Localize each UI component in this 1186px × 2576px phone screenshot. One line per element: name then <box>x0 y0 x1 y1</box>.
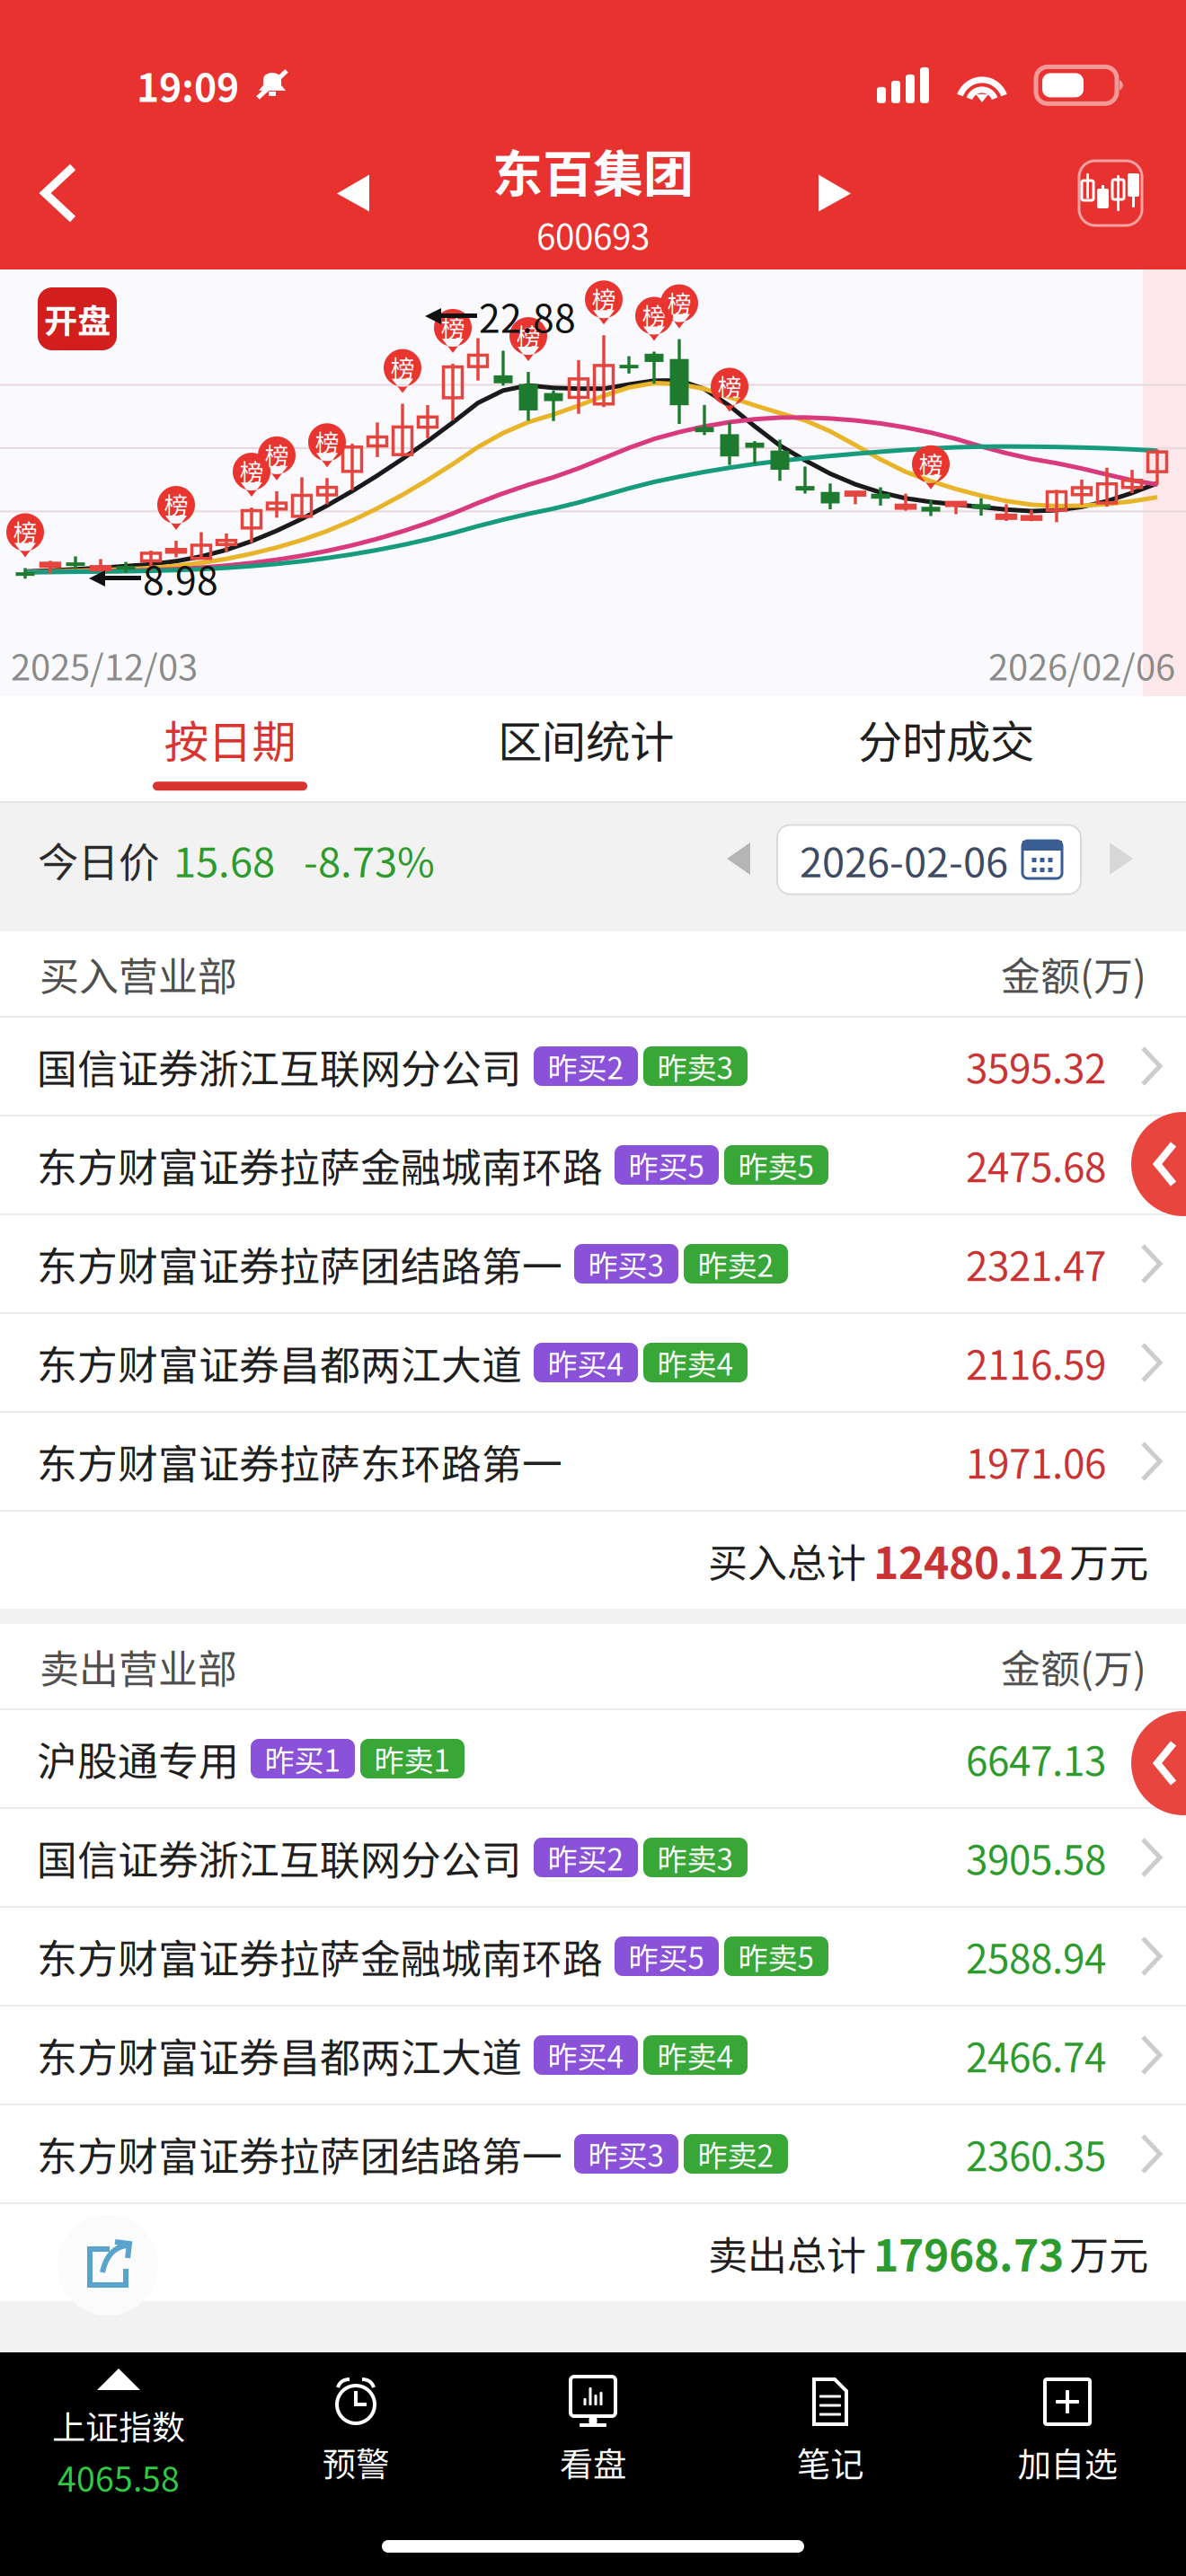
button[interactable]: 上证指数 <box>0 2365 237 2502</box>
staticText: 15.68 <box>173 830 275 889</box>
staticText: 22.88 <box>479 288 576 344</box>
staticText: 金额(万) <box>1001 1637 1146 1695</box>
staticText: 600693 <box>536 209 650 260</box>
staticText: 2025/12/03 <box>11 639 198 691</box>
button[interactable]: 东方财富证券拉萨金融城南环路 <box>0 1908 1186 2005</box>
staticText: 加自选 <box>1018 2438 1117 2486</box>
staticText: 1971.06 <box>966 1433 1106 1490</box>
staticText: 榜 <box>265 437 289 472</box>
staticText: 榜 <box>164 487 188 521</box>
staticText: 上证指数 <box>52 2401 185 2449</box>
staticText: 万元 <box>1069 1531 1148 1589</box>
staticText: 东方财富证券拉萨东环路第一 <box>37 1432 562 1491</box>
staticText: 榜 <box>667 285 691 320</box>
button[interactable]: 上一只 <box>301 135 405 251</box>
staticText: 榜 <box>13 514 37 549</box>
button[interactable]: 东方财富证券拉萨团结路第一 <box>0 2105 1186 2202</box>
staticText: 国信证券浙江互联网分公司 <box>37 1037 522 1095</box>
staticText: 昨买4 <box>548 1341 624 1384</box>
staticText: 昨卖2 <box>698 2132 774 2176</box>
button[interactable]: 东方财富证券昌都两江大道 <box>0 1314 1186 1411</box>
staticText: 昨卖5 <box>738 1935 814 1978</box>
staticText: 昨卖3 <box>657 1045 734 1088</box>
staticText: 榜 <box>592 281 616 316</box>
staticText: 榜 <box>239 453 264 488</box>
button[interactable]: 下一只 <box>783 135 887 251</box>
staticText: 卖出总计 <box>708 2224 866 2281</box>
staticText: 昨买1 <box>265 1737 341 1780</box>
staticText: 预警 <box>323 2438 389 2486</box>
staticText: 2475.68 <box>966 1136 1106 1194</box>
staticText: 昨买3 <box>588 1242 664 1285</box>
staticText: 东方财富证券昌都两江大道 <box>37 1333 522 1392</box>
staticText: 2026/02/06 <box>988 639 1175 691</box>
staticText: 榜 <box>717 368 742 403</box>
button[interactable]: 预警 <box>237 2375 474 2492</box>
button[interactable]: 区间统计 <box>374 696 798 801</box>
staticText: 6647.13 <box>966 1730 1106 1787</box>
staticText: 开盘 <box>44 295 111 343</box>
staticText: 国信证券浙江互联网分公司 <box>37 1828 522 1887</box>
staticText: -8.73% <box>304 830 435 889</box>
button[interactable]: 分时成交 <box>798 696 1094 801</box>
button[interactable]: 东方财富证券拉萨东环路第一 <box>0 1413 1186 1510</box>
staticText: 榜 <box>919 446 943 481</box>
staticText: 榜 <box>315 424 339 459</box>
staticText: 昨卖3 <box>657 1836 734 1879</box>
staticText: 昨买2 <box>548 1836 624 1879</box>
staticText: 卖出营业部 <box>40 1637 237 1695</box>
staticText: 看盘 <box>560 2438 626 2486</box>
button[interactable]: K线图 <box>1059 139 1186 247</box>
staticText: 昨卖2 <box>698 1242 774 1285</box>
staticText: 沪股通专用 <box>37 1730 239 1788</box>
staticText: 8.98 <box>143 551 218 606</box>
staticText: 榜 <box>441 310 465 344</box>
staticText: 昨买3 <box>588 2132 664 2176</box>
staticText: 昨卖5 <box>738 1143 814 1187</box>
staticText: 2026-02-06 <box>800 830 1008 889</box>
staticText: 3595.32 <box>966 1037 1106 1095</box>
staticText: 买入营业部 <box>40 945 237 1002</box>
button[interactable]: 东方财富证券拉萨金融城南环路 <box>0 1116 1186 1213</box>
staticText: 区间统计 <box>498 707 674 771</box>
staticText: 昨买5 <box>628 1143 705 1187</box>
button[interactable]: 看盘 <box>474 2375 712 2492</box>
staticText: 17968.73 <box>873 2221 1064 2284</box>
button[interactable]: 国信证券浙江互联网分公司 <box>0 1809 1186 1906</box>
button[interactable]: 分享 <box>58 2215 158 2316</box>
button[interactable]: 展开 <box>1141 1112 1186 1216</box>
staticText: 2588.94 <box>966 1928 1106 1985</box>
button[interactable]: 按日期 <box>86 696 374 801</box>
staticText: 东方财富证券拉萨金融城南环路 <box>37 1927 603 1985</box>
button[interactable]: 加自选 <box>949 2375 1186 2492</box>
staticText: 2116.59 <box>966 1334 1106 1391</box>
staticText: 榜 <box>516 318 540 352</box>
button[interactable]: 东方财富证券拉萨团结路第一 <box>0 1215 1186 1312</box>
staticText: 昨卖4 <box>657 2033 734 2077</box>
staticText: 昨卖4 <box>657 1341 734 1384</box>
staticText: 东方财富证券拉萨金融城南环路 <box>37 1136 603 1194</box>
button[interactable]: 国信证券浙江互联网分公司 <box>0 1018 1186 1115</box>
button[interactable]: 笔记 <box>712 2375 949 2492</box>
button[interactable]: 展开 <box>1141 1711 1186 1815</box>
staticText: 万元 <box>1069 2224 1148 2281</box>
staticText: 昨买2 <box>548 1045 624 1088</box>
button[interactable]: 后一天 <box>1081 805 1153 914</box>
button[interactable]: 沪股通专用 <box>0 1710 1186 1807</box>
staticText: 2360.35 <box>966 2125 1106 2182</box>
button[interactable]: 东方财富证券昌都两江大道 <box>0 2007 1186 2104</box>
staticText: 笔记 <box>797 2438 863 2486</box>
staticText: 昨买4 <box>548 2033 624 2077</box>
staticText: 榜 <box>642 297 666 332</box>
staticText: 2466.74 <box>966 2026 1106 2084</box>
staticText: 买入总计 <box>708 1531 866 1589</box>
button[interactable]: 前一天 <box>702 805 777 914</box>
button[interactable]: 2026-02-06 <box>777 825 1081 894</box>
staticText: 按日期 <box>164 707 296 771</box>
staticText: 4065.58 <box>58 2453 180 2502</box>
staticText: 金额(万) <box>1001 945 1146 1002</box>
staticText: 19:09 <box>137 57 239 113</box>
button[interactable]: 返回 <box>0 138 120 248</box>
staticText: 12480.12 <box>873 1529 1064 1591</box>
staticText: 2321.47 <box>966 1235 1106 1292</box>
